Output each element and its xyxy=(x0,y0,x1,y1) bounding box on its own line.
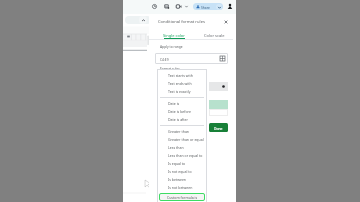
staticText: Share xyxy=(201,5,210,9)
button[interactable]: Less than or equal to xyxy=(157,151,207,159)
button[interactable]: Date is before xyxy=(157,107,207,115)
button[interactable]: Date is xyxy=(157,99,207,107)
staticText: Custom formula is xyxy=(167,195,198,200)
staticText: Is equal to xyxy=(168,161,186,166)
staticText: Less than or equal to xyxy=(168,153,203,158)
button[interactable]: Text starts with xyxy=(157,71,207,79)
button[interactable]: Version history xyxy=(152,4,157,9)
staticText: Single color xyxy=(163,33,185,38)
button[interactable]: Greater than xyxy=(157,127,207,135)
button[interactable]: Custom formula is xyxy=(159,193,205,201)
button[interactable]: Is between xyxy=(157,175,207,183)
staticText: Text is exactly xyxy=(168,89,191,94)
staticText: Text starts with xyxy=(168,73,193,78)
button[interactable]: Comment xyxy=(164,4,169,9)
staticText: Date is before xyxy=(168,109,191,114)
staticText: Apply to range xyxy=(160,44,183,48)
staticText: C4:E9 xyxy=(160,57,169,61)
button[interactable]: Formatting style xyxy=(209,82,228,91)
staticText: Greater than or equal to xyxy=(168,137,207,142)
button[interactable]: Done xyxy=(209,123,228,132)
staticText: Is not equal to xyxy=(168,169,192,174)
staticText: Text ends with xyxy=(168,81,192,86)
staticText: Color scale xyxy=(204,33,225,38)
button[interactable]: Share xyxy=(193,3,223,10)
button[interactable]: Less than xyxy=(157,143,207,151)
staticText: Conditional format rules xyxy=(158,19,205,25)
staticText: Format rules xyxy=(160,66,180,70)
staticText: Is not between xyxy=(168,185,193,190)
staticText: Is between xyxy=(168,177,187,182)
button[interactable]: Account xyxy=(227,3,233,9)
button[interactable]: Greater than or equal to xyxy=(157,135,207,143)
button[interactable]: Close xyxy=(223,19,229,25)
button[interactable]: Meet xyxy=(176,4,182,10)
button[interactable]: Is equal to xyxy=(157,159,207,167)
button[interactable]: Collapse toolbar xyxy=(125,16,151,24)
staticText: Date is xyxy=(168,101,180,106)
button[interactable]: Single color xyxy=(161,32,187,39)
button[interactable]: Is not equal to xyxy=(157,167,207,175)
staticText: Date is after xyxy=(168,117,189,122)
button[interactable]: Text ends with xyxy=(157,79,207,87)
button[interactable]: Text is exactly xyxy=(157,87,207,95)
staticText: Greater than xyxy=(168,129,190,134)
staticText: Done xyxy=(214,126,223,130)
button[interactable]: Color scale xyxy=(201,32,227,39)
button[interactable]: C4:E9 xyxy=(155,53,228,64)
button[interactable]: Is not between xyxy=(157,183,207,191)
button[interactable]: Date is after xyxy=(157,115,207,123)
staticText: Less than xyxy=(168,145,184,150)
